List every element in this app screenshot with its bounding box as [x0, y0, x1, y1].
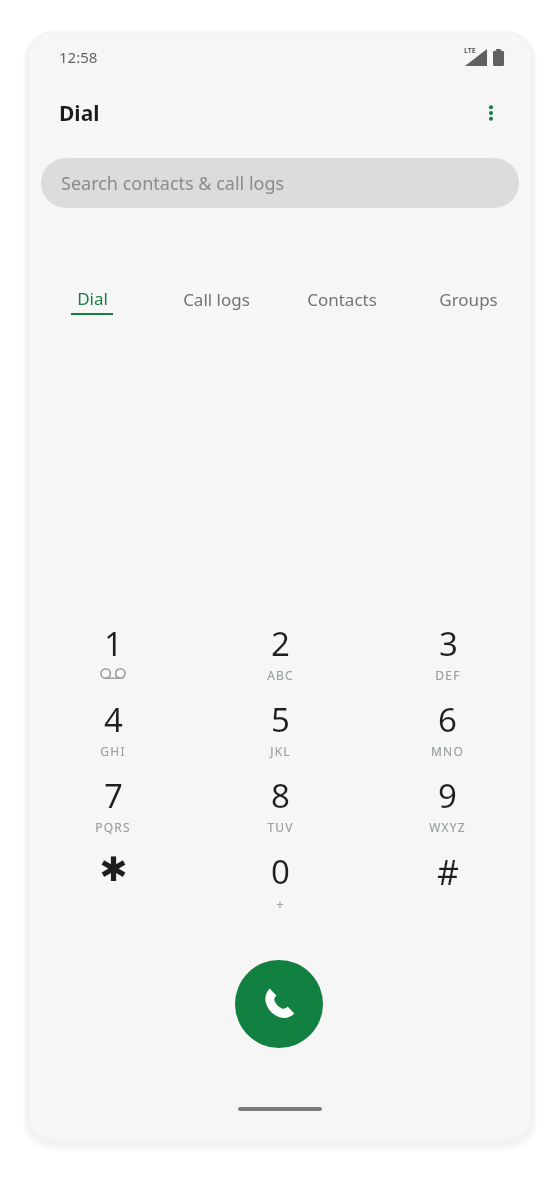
- staticText: WXYZ: [429, 819, 466, 835]
- button[interactable]: Contacts: [279, 278, 405, 324]
- button[interactable]: 9: [364, 773, 531, 849]
- staticText: PQRS: [95, 819, 131, 835]
- button[interactable]: 1: [29, 621, 197, 697]
- button[interactable]: 3: [364, 621, 531, 697]
- staticText: 4: [104, 697, 123, 742]
- button[interactable]: More options: [467, 89, 515, 137]
- staticText: 0: [271, 849, 290, 894]
- staticText: LTE: [464, 46, 476, 56]
- button[interactable]: ✱: [29, 849, 197, 925]
- staticText: Dial: [77, 287, 108, 310]
- button[interactable]: Call logs: [154, 278, 279, 324]
- button[interactable]: 2: [197, 621, 364, 697]
- staticText: Contacts: [307, 288, 377, 311]
- button[interactable]: 7: [29, 773, 197, 849]
- staticText: GHI: [100, 743, 126, 759]
- button[interactable]: Dial: [29, 278, 154, 324]
- button[interactable]: 6: [364, 697, 531, 773]
- staticText: DEF: [435, 667, 461, 683]
- staticText: 3: [439, 621, 458, 666]
- staticText: MNO: [431, 743, 464, 759]
- staticText: 8: [271, 773, 290, 818]
- staticText: ✱: [99, 849, 128, 889]
- staticText: TUV: [267, 819, 294, 835]
- staticText: 5: [271, 697, 290, 742]
- staticText: Dial: [59, 99, 100, 128]
- staticText: 2: [271, 621, 290, 666]
- button[interactable]: Groups: [405, 278, 531, 324]
- button[interactable]: Call: [235, 960, 323, 1048]
- button[interactable]: 5: [197, 697, 364, 773]
- staticText: 9: [438, 773, 457, 818]
- staticText: JKL: [270, 743, 291, 759]
- staticText: 12:58: [59, 47, 98, 67]
- staticText: 1: [104, 621, 123, 666]
- button[interactable]: 4: [29, 697, 197, 773]
- button[interactable]: 8: [197, 773, 364, 849]
- staticText: Search contacts & call logs: [61, 171, 285, 196]
- staticText: Call logs: [183, 288, 250, 311]
- button[interactable]: Search contacts & call logs: [41, 158, 519, 208]
- button[interactable]: #: [364, 849, 531, 925]
- staticText: +: [276, 895, 285, 913]
- button[interactable]: 0: [197, 849, 364, 925]
- staticText: 7: [104, 773, 123, 818]
- staticText: #: [437, 849, 459, 895]
- staticText: Groups: [439, 288, 498, 311]
- staticText: 6: [438, 697, 457, 742]
- staticText: ABC: [267, 667, 294, 683]
